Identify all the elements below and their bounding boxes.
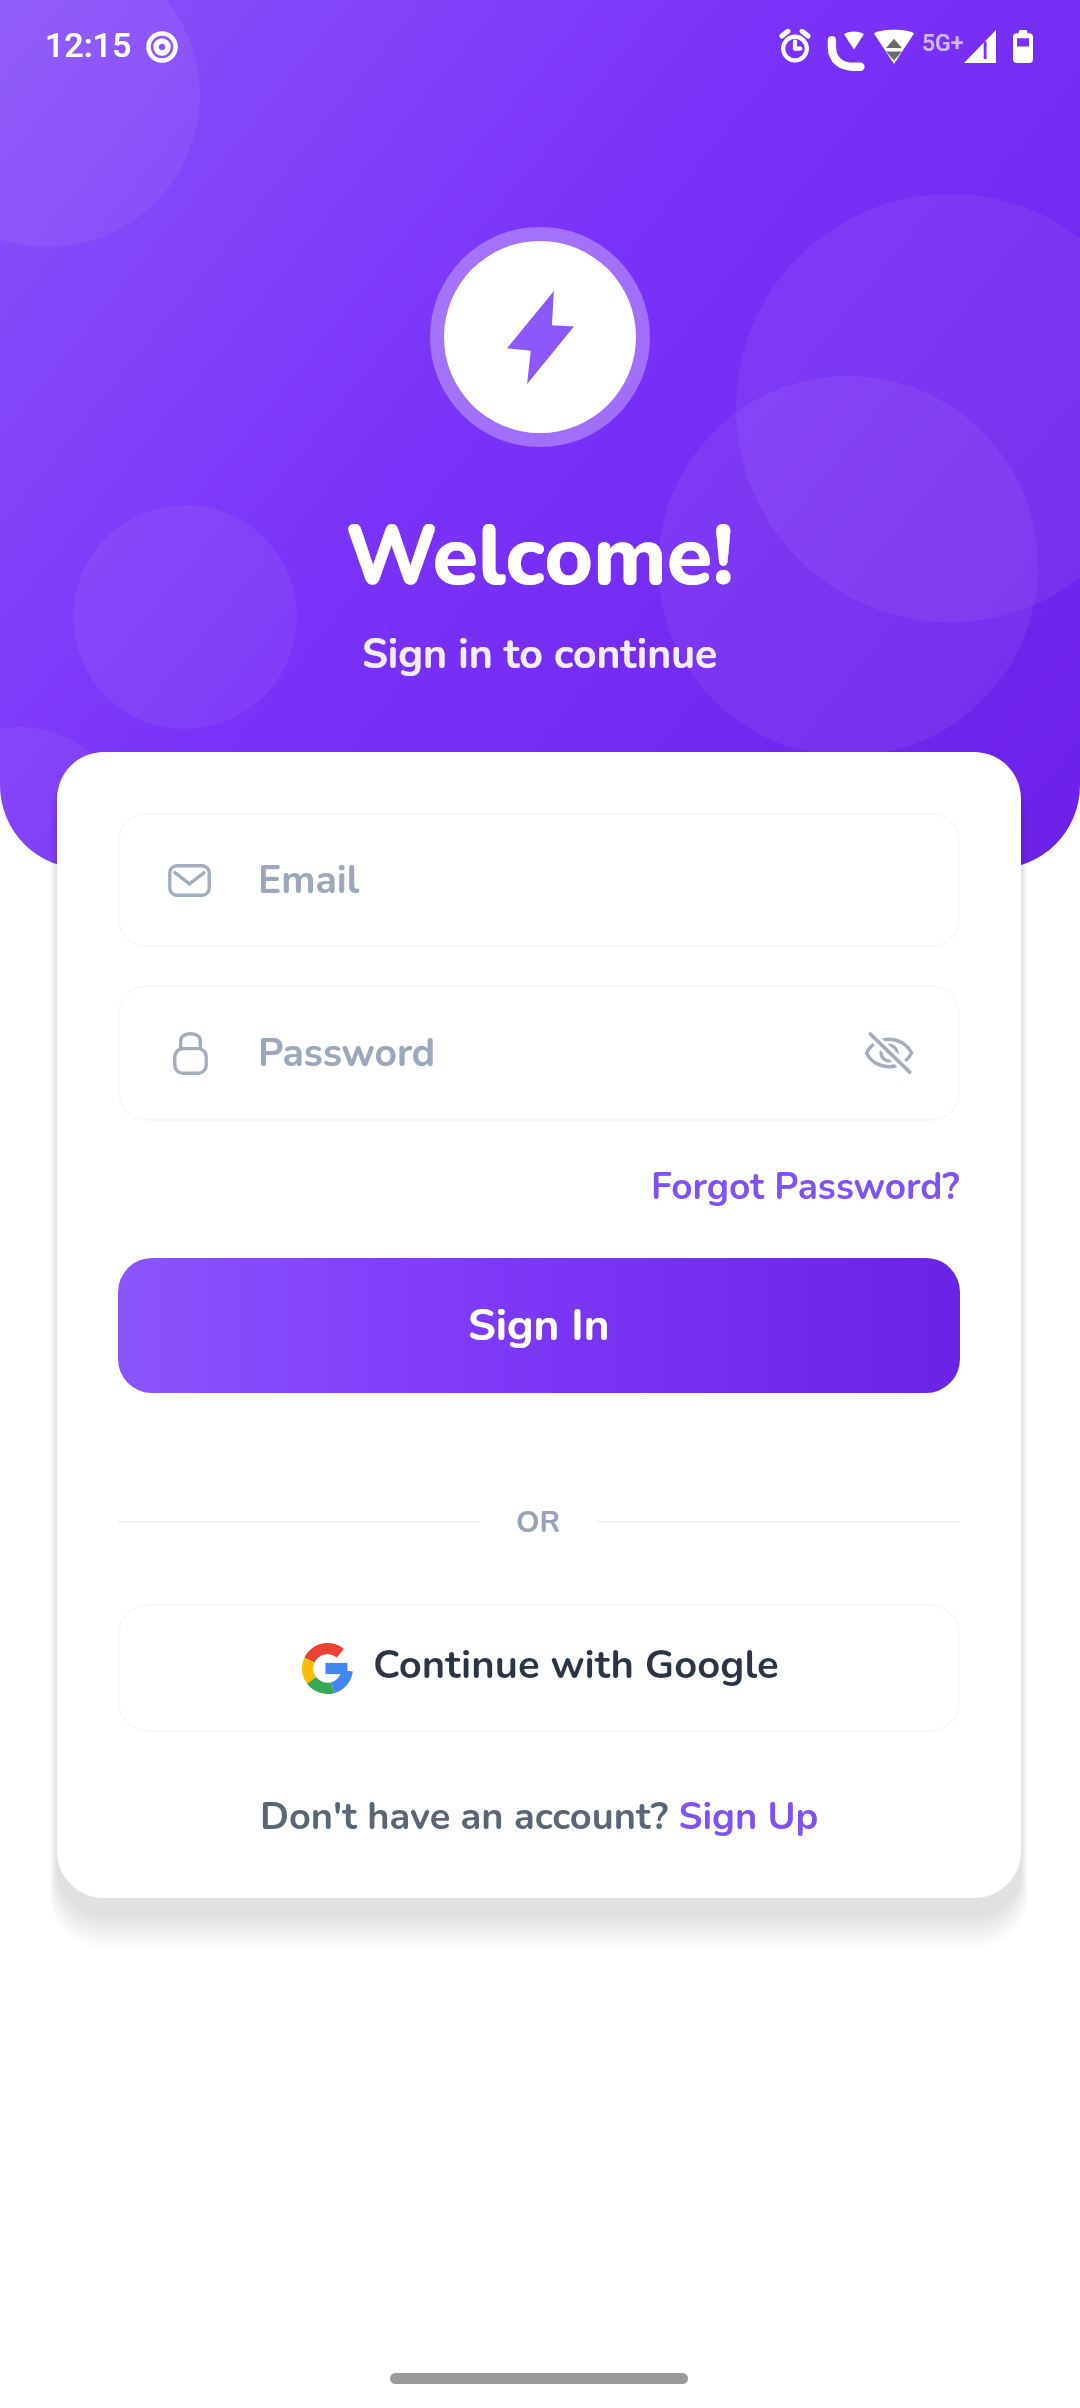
- button[interactable]: Email: [118, 813, 960, 947]
- staticText: Password: [258, 1027, 436, 1080]
- button[interactable]: Show password: [834, 998, 944, 1108]
- staticText: Welcome!: [345, 500, 735, 613]
- button[interactable]: Forgot Password?: [645, 1154, 966, 1220]
- staticText: OR: [516, 1502, 561, 1543]
- button[interactable]: Sign In: [118, 1258, 960, 1393]
- staticText: Email: [258, 854, 360, 907]
- staticText: 5G+: [922, 30, 964, 57]
- button[interactable]: Continue with Google: [118, 1604, 960, 1732]
- staticText: Continue with Google: [373, 1638, 779, 1693]
- button[interactable]: Don't have an account? Sign Up: [250, 1783, 829, 1851]
- staticText: Forgot Password?: [651, 1162, 960, 1212]
- staticText: Sign In: [468, 1296, 610, 1356]
- staticText: Don't have an account? Sign Up: [260, 1791, 819, 1843]
- staticText: 12:15: [45, 25, 132, 65]
- staticText: Sign in to continue: [362, 627, 718, 683]
- button[interactable]: Password: [118, 985, 960, 1121]
